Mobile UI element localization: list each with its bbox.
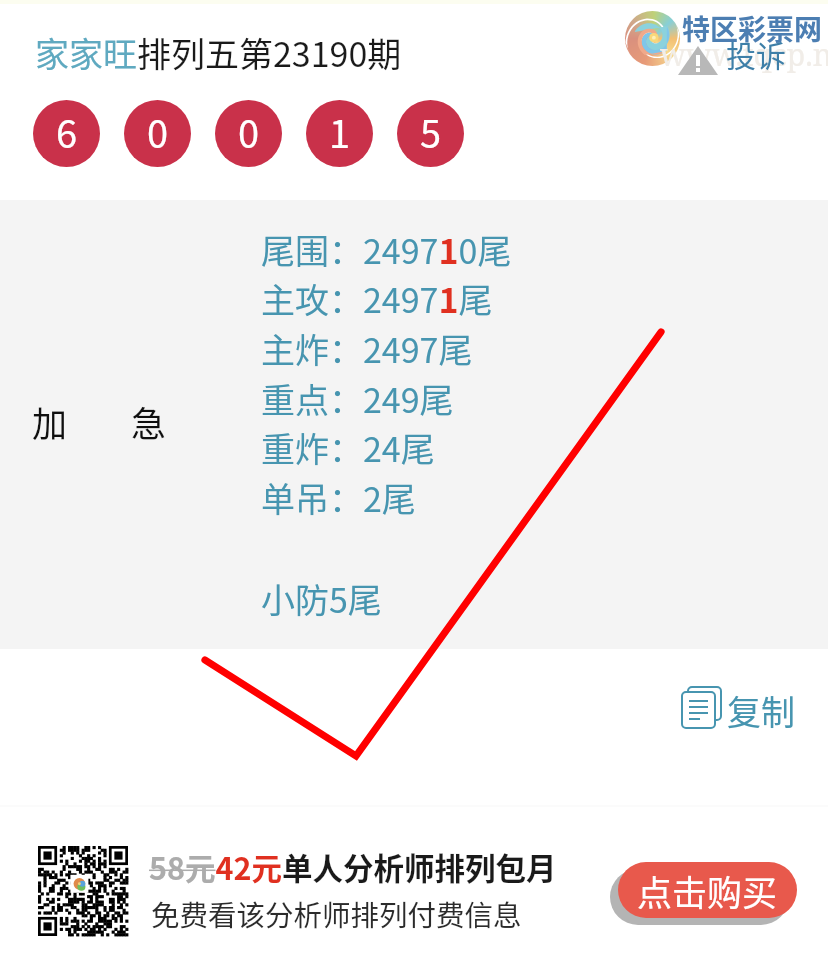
staticText: 5 xyxy=(420,104,442,159)
staticText: 家家旺排列五第23190期 xyxy=(35,28,402,77)
other: 二维码 xyxy=(38,846,128,936)
staticText: 重点：249尾 xyxy=(261,374,454,423)
staticText: 1 xyxy=(329,104,351,159)
staticText: 主炸：2497尾 xyxy=(261,324,473,373)
staticText: 免费看该分析师排列付费信息 xyxy=(151,893,522,934)
button[interactable]: 复制 xyxy=(682,686,795,735)
staticText: 小防5尾 xyxy=(261,574,382,623)
staticText: 急 xyxy=(131,396,167,447)
staticText: 特区彩票网 xyxy=(682,8,823,49)
button[interactable]: 投诉 xyxy=(678,34,786,74)
other: 特区彩票网 xyxy=(625,11,680,66)
button[interactable]: 加 xyxy=(20,395,80,447)
staticText: 主攻：24971尾 xyxy=(261,274,493,323)
staticText: 单吊：2尾 xyxy=(261,473,416,522)
button[interactable]: 0 xyxy=(124,100,191,167)
staticText: 重炸：24尾 xyxy=(261,423,435,472)
staticText: 6 xyxy=(56,104,78,159)
staticText: www.tqcp.net xyxy=(660,34,828,75)
button[interactable]: 点击购买 xyxy=(618,862,797,918)
button[interactable]: 急 xyxy=(119,395,179,447)
staticText: 0 xyxy=(147,104,169,159)
staticText: 58元42元单人分析师排列包月 xyxy=(149,845,557,889)
button[interactable]: 二维码 xyxy=(0,808,828,970)
button[interactable]: 6 xyxy=(33,100,100,167)
button[interactable]: 5 xyxy=(397,100,464,167)
other: 复制 xyxy=(682,686,724,730)
staticText: 尾围：249710尾 xyxy=(261,225,512,274)
button[interactable]: 1 xyxy=(306,100,373,167)
staticText: 投诉 xyxy=(726,32,786,72)
staticText: 复制 xyxy=(727,686,795,735)
staticText: 点击购买 xyxy=(637,865,778,916)
staticText: 加 xyxy=(32,396,68,447)
button[interactable]: 家家旺排列五第23190期 xyxy=(20,20,420,76)
button[interactable]: 0 xyxy=(215,100,282,167)
staticText: 0 xyxy=(238,104,260,159)
